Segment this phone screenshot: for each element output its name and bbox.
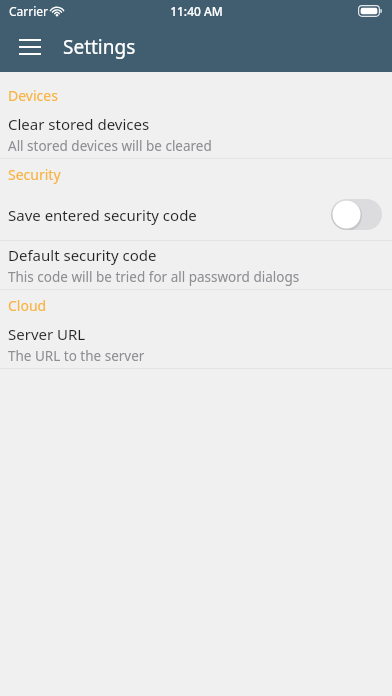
staticText: Default security code: [8, 245, 157, 265]
button[interactable]: Server URL: [0, 320, 392, 368]
staticText: Settings: [63, 34, 136, 60]
staticText: The URL to the server: [8, 347, 145, 365]
button[interactable]: Open navigation menu: [8, 25, 52, 69]
staticText: 11:40 AM: [170, 3, 223, 19]
staticText: Carrier: [9, 3, 49, 19]
staticText: This code will be tried for all password…: [8, 268, 300, 286]
staticText: Security: [8, 165, 61, 184]
button[interactable]: Save entered security code: [0, 189, 392, 240]
staticText: Clear stored devices: [8, 114, 150, 134]
button[interactable]: Default security code: [0, 241, 392, 289]
staticText: Cloud: [8, 296, 47, 315]
staticText: All stored devices will be cleared: [8, 137, 212, 155]
staticText: Devices: [8, 86, 58, 105]
staticText: Server URL: [8, 324, 86, 344]
button[interactable]: Clear stored devices: [0, 110, 392, 158]
button[interactable]: Save entered security code toggle: [331, 199, 382, 230]
staticText: Save entered security code: [8, 205, 197, 225]
